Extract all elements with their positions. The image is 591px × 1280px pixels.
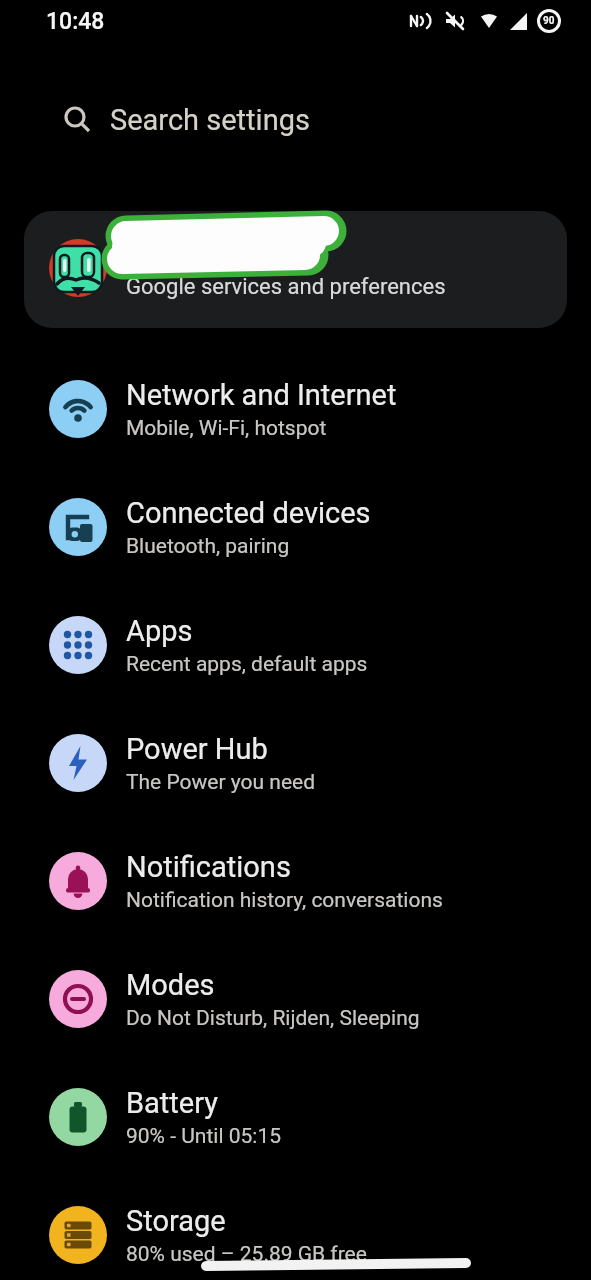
- staticText: Notifications: [126, 850, 291, 884]
- button[interactable]: Network and Internet: [0, 350, 591, 468]
- button[interactable]: Battery: [0, 1058, 591, 1176]
- button[interactable]: Apps: [0, 586, 591, 704]
- staticText: 90% - Until 05:15: [126, 1124, 282, 1149]
- staticText: Modes: [126, 968, 215, 1002]
- staticText: Do Not Disturb, Rijden, Sleeping: [126, 1006, 420, 1031]
- staticText: The Power you need: [126, 770, 316, 795]
- staticText: 10:48: [46, 8, 105, 35]
- button[interactable]: Storage: [0, 1176, 591, 1280]
- staticText: Search settings: [110, 103, 310, 137]
- staticText: 90: [543, 15, 555, 27]
- button[interactable]: Connected devices: [0, 468, 591, 586]
- button[interactable]: Notifications: [0, 822, 591, 940]
- button[interactable]: Modes: [0, 940, 591, 1058]
- staticText: Bluetooth, pairing: [126, 534, 290, 559]
- staticText: Storage: [126, 1204, 226, 1238]
- staticText: Apps: [126, 614, 193, 648]
- staticText: Power Hub: [126, 732, 268, 766]
- staticText: Mobile, Wi-Fi, hotspot: [126, 416, 327, 441]
- button[interactable]: Google services and preferences: [24, 211, 567, 328]
- staticText: Recent apps, default apps: [126, 652, 368, 677]
- button[interactable]: Search settings: [0, 95, 591, 145]
- staticText: 80% used – 25.89 GB free: [126, 1242, 367, 1267]
- staticText: Network and Internet: [126, 378, 397, 412]
- staticText: Battery: [126, 1086, 218, 1120]
- staticText: Google services and preferences: [126, 274, 446, 300]
- button[interactable]: Power Hub: [0, 704, 591, 822]
- staticText: Connected devices: [126, 496, 371, 530]
- staticText: Notification history, conversations: [126, 888, 443, 913]
